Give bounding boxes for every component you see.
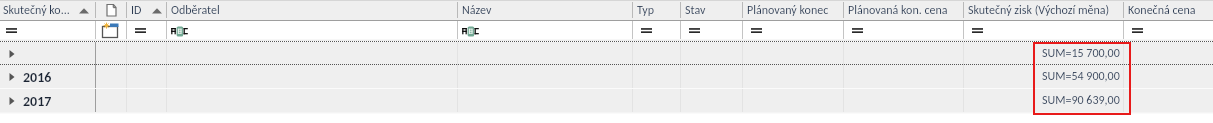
- staticText: SUM=90 639,00: [1042, 93, 1120, 108]
- staticText: SUM=54 900,00: [1042, 69, 1120, 84]
- button[interactable]: Equals filter: [135, 27, 148, 36]
- staticText: Skutečný zisk (Výchozí měna): [968, 3, 1110, 18]
- button[interactable]: Stav: [685, 3, 706, 18]
- button[interactable]: Plánovaný konec: [747, 3, 829, 18]
- button[interactable]: Text filter: [171, 26, 189, 37]
- button[interactable]: Equals filter: [972, 27, 985, 36]
- button[interactable]: Název: [462, 3, 492, 18]
- button[interactable]: Konečná cena: [1128, 3, 1196, 18]
- button[interactable]: 2017: [23, 93, 52, 110]
- button[interactable]: Text filter: [462, 26, 480, 37]
- button[interactable]: Skutečný zisk (Výchozí měna): [968, 3, 1110, 18]
- staticText: ID: [131, 3, 142, 18]
- staticText: 2016: [23, 69, 52, 86]
- staticText: 2017: [23, 93, 52, 110]
- button[interactable]: Equals filter: [751, 27, 764, 36]
- button[interactable]: Plánovaná kon. cena: [848, 3, 948, 18]
- staticText: SUM=15 700,00: [1042, 46, 1120, 61]
- staticText: Plánovaný konec: [747, 3, 829, 18]
- staticText: Skutečný ko...: [3, 3, 70, 18]
- button[interactable]: 2016: [23, 69, 52, 86]
- button[interactable]: Sort ascending: [149, 4, 165, 16]
- staticText: Konečná cena: [1128, 3, 1196, 18]
- button[interactable]: Equals filter: [689, 27, 702, 36]
- button[interactable]: Equals filter: [6, 27, 19, 36]
- staticText: Plánovaná kon. cena: [848, 3, 948, 18]
- button[interactable]: Record indicator: [103, 2, 119, 19]
- button[interactable]: Expand group: [8, 72, 18, 82]
- staticText: Typ: [637, 3, 655, 18]
- button[interactable]: Expand group: [8, 96, 18, 106]
- button[interactable]: Odběratel: [171, 3, 220, 18]
- button[interactable]: Equals filter: [852, 27, 865, 36]
- button[interactable]: Skutečný ko...: [3, 3, 70, 18]
- staticText: Odběratel: [171, 3, 220, 18]
- button[interactable]: New record: [101, 22, 123, 39]
- staticText: Stav: [685, 3, 706, 18]
- button[interactable]: Typ: [637, 3, 655, 18]
- button[interactable]: Sort ascending: [76, 4, 92, 16]
- button[interactable]: Equals filter: [1132, 27, 1145, 36]
- button[interactable]: ID: [131, 3, 142, 18]
- button[interactable]: Expand group: [8, 49, 18, 59]
- button[interactable]: Equals filter: [641, 27, 654, 36]
- staticText: Název: [462, 3, 492, 18]
